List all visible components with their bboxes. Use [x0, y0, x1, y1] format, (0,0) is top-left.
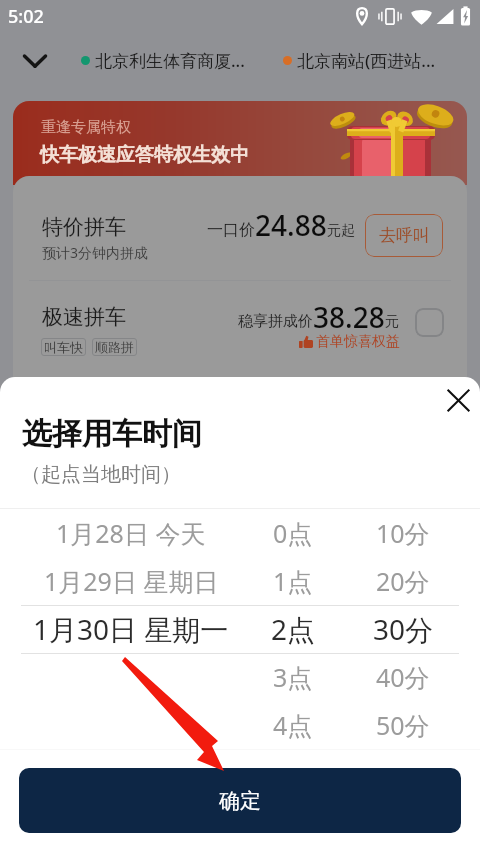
- staticText: 50分: [376, 708, 430, 742]
- button[interactable]: [16, 653, 246, 701]
- button[interactable]: 北京南站(西进站...: [283, 39, 436, 81]
- staticText: （起点当地时间）: [21, 462, 181, 487]
- button[interactable]: 1月28日 今天: [16, 509, 246, 557]
- staticText: 北京利生体育商厦...: [95, 49, 245, 72]
- button[interactable]: 40分: [288, 653, 480, 701]
- staticText: 顺路拼: [95, 339, 134, 355]
- staticText: 选择用车时间: [22, 415, 202, 453]
- button[interactable]: 2点: [178, 605, 408, 653]
- staticText: 一口价: [207, 220, 255, 240]
- staticText: 1点: [273, 564, 313, 598]
- staticText: 5:02: [8, 4, 44, 29]
- staticText: 1月28日 今天: [56, 516, 206, 550]
- button[interactable]: 10分: [288, 509, 480, 557]
- button[interactable]: Select ride: [415, 308, 444, 337]
- button[interactable]: 30分: [288, 605, 480, 653]
- staticText: 38.28: [313, 298, 385, 336]
- staticText: 首单惊喜权益: [316, 333, 400, 351]
- staticText: 1月30日 星期一: [33, 610, 229, 648]
- staticText: 2点: [271, 610, 316, 648]
- button[interactable]: 特价拼车: [13, 176, 467, 280]
- button[interactable]: 4点: [178, 701, 408, 749]
- button[interactable]: 去呼叫: [365, 214, 443, 257]
- staticText: 元: [385, 313, 399, 331]
- button[interactable]: Expand trip details: [15, 41, 55, 81]
- button[interactable]: 重逢专属特权: [13, 101, 467, 185]
- button[interactable]: 3点: [178, 653, 408, 701]
- staticText: 40分: [376, 660, 430, 694]
- staticText: 10分: [376, 516, 430, 550]
- staticText: 元起: [327, 222, 355, 240]
- button[interactable]: 1点: [178, 557, 408, 605]
- button[interactable]: 1月29日 星期日: [16, 557, 246, 605]
- button[interactable]: 北京利生体育商厦...: [81, 39, 245, 81]
- button[interactable]: 20分: [288, 557, 480, 605]
- button[interactable]: 50分: [288, 701, 480, 749]
- button[interactable]: [16, 701, 246, 749]
- staticText: 特价拼车: [42, 214, 126, 240]
- staticText: 去呼叫: [379, 225, 430, 246]
- staticText: 4点: [273, 708, 313, 742]
- button[interactable]: 1月30日 星期一: [16, 605, 246, 653]
- staticText: 1月29日 星期日: [44, 564, 219, 598]
- button[interactable]: 极速拼车: [13, 281, 467, 376]
- staticText: 24.88: [255, 206, 327, 244]
- staticText: 重逢专属特权: [41, 118, 131, 137]
- button[interactable]: Close: [438, 380, 478, 420]
- staticText: 20分: [376, 564, 430, 598]
- staticText: 快车极速应答特权生效中: [40, 143, 249, 167]
- staticText: 3点: [273, 660, 313, 694]
- staticText: 极速拼车: [42, 304, 126, 330]
- staticText: 30分: [373, 610, 434, 648]
- staticText: 稳享拼成价: [238, 312, 313, 331]
- staticText: 叫车快: [44, 339, 83, 355]
- staticText: 确定: [219, 788, 261, 814]
- staticText: 北京南站(西进站...: [297, 49, 436, 72]
- staticText: 预计3分钟内拼成: [42, 243, 149, 262]
- button[interactable]: 0点: [178, 509, 408, 557]
- button[interactable]: 确定: [19, 768, 461, 833]
- staticText: 0点: [273, 516, 313, 550]
